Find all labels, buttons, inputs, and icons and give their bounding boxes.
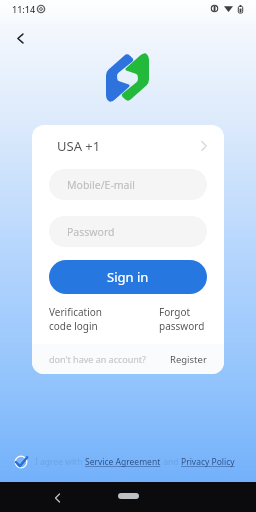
staticText: don't have an account? bbox=[49, 353, 147, 365]
staticText: USA +1 bbox=[57, 137, 101, 155]
button[interactable]: Register bbox=[170, 353, 207, 366]
staticText: and bbox=[161, 456, 181, 468]
button[interactable]: Verification code login bbox=[49, 305, 119, 333]
button[interactable]: Back bbox=[49, 490, 65, 506]
button[interactable]: Password bbox=[49, 216, 207, 247]
staticText: Service Agreement bbox=[85, 456, 161, 468]
staticText: Mobile/E-mail bbox=[67, 178, 135, 192]
button[interactable]: Mobile/E-mail bbox=[49, 169, 207, 200]
button[interactable]: Sign in bbox=[49, 260, 207, 294]
button[interactable]: Agree to terms bbox=[14, 455, 28, 469]
staticText: I agree with bbox=[35, 456, 85, 468]
button[interactable]: USA +1 bbox=[32, 125, 224, 167]
staticText: 11:14 bbox=[12, 3, 36, 15]
staticText: Password bbox=[67, 225, 115, 239]
button[interactable]: Privacy Policy bbox=[181, 456, 235, 468]
button[interactable]: Forgot password bbox=[159, 305, 209, 333]
button[interactable]: Back bbox=[7, 25, 33, 51]
staticText: Verification code login bbox=[49, 305, 102, 333]
staticText: Register bbox=[170, 353, 207, 366]
staticText: Forgot password bbox=[159, 305, 205, 333]
button[interactable]: Home bbox=[118, 493, 139, 499]
button[interactable]: Service Agreement bbox=[85, 456, 161, 468]
staticText: Privacy Policy bbox=[181, 456, 235, 468]
staticText: Sign in bbox=[107, 268, 149, 286]
